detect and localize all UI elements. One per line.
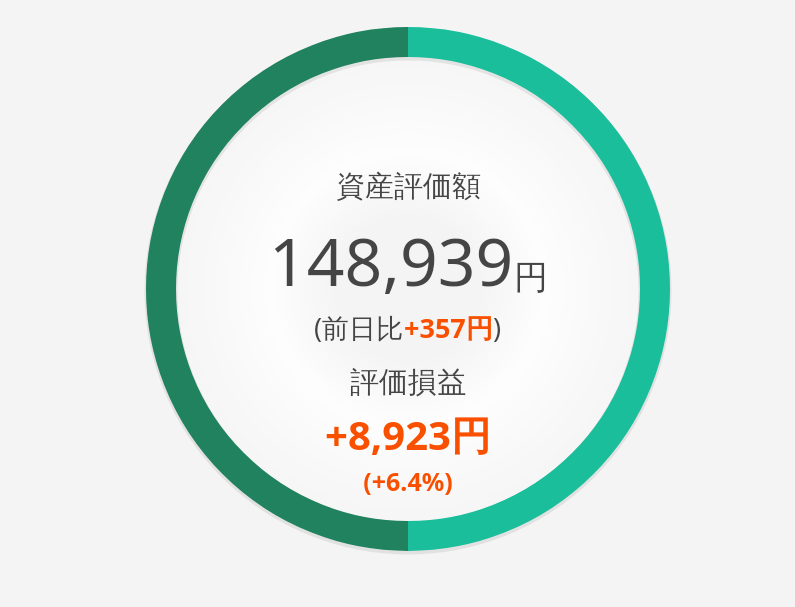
staticText: (+6.4%) bbox=[363, 464, 453, 498]
staticText: 評価損益 bbox=[350, 364, 466, 401]
staticText: 円 bbox=[514, 256, 548, 299]
staticText: 148,939 bbox=[269, 215, 514, 305]
staticText: 資産評価額 bbox=[336, 168, 481, 205]
staticText: (前日比 bbox=[314, 309, 404, 346]
staticText: ) bbox=[493, 309, 502, 346]
staticText: +8,923円 bbox=[325, 407, 491, 462]
button[interactable]: 資産評価額 サマリー bbox=[136, 17, 680, 561]
staticText: +357円 bbox=[404, 309, 493, 346]
